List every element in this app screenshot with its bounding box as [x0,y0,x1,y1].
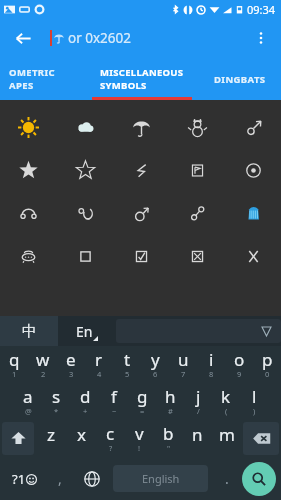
button[interactable]: i [197,346,225,383]
button[interactable]: e [57,346,85,383]
staticText: h [165,385,176,408]
button[interactable]: Symbol [169,192,225,235]
button[interactable]: Symbol [225,149,281,192]
staticText: MISCELLANEOUS SYMBOLS [100,66,184,92]
staticText: ?1 [12,470,26,488]
button[interactable]: Symbol [57,192,113,235]
staticText: w [36,348,50,371]
button[interactable]: MISCELLANEOUS SYMBOLS [92,58,192,100]
staticText: 1 [12,369,17,379]
staticText: 3 [69,369,74,379]
button[interactable]: Symbol [169,106,225,149]
button[interactable]: p [253,346,281,383]
staticText: 9 [237,369,242,379]
staticText: En [76,322,93,341]
staticText: 8 [209,369,214,379]
button[interactable]: m [212,420,241,457]
staticText: n [192,423,203,446]
button[interactable]: h [156,383,184,420]
staticText: , [58,469,62,488]
staticText: = [140,406,145,416]
staticText: 6 [153,369,158,379]
button[interactable]: ?1 [3,460,45,497]
staticText: a [23,385,33,408]
button[interactable]: OMETRIC APES [0,58,92,100]
button[interactable]: b [154,420,183,457]
button[interactable]: Symbol [169,149,225,192]
button[interactable]: k [212,383,240,420]
button[interactable]: s [42,383,71,420]
button[interactable]: r [85,346,113,383]
staticText: ( [225,406,228,416]
button[interactable]: z [36,420,66,457]
staticText: . [225,469,229,488]
button[interactable]: v [125,420,154,457]
staticText: d [80,385,91,408]
staticText: k [221,385,231,408]
button[interactable]: Symbol [225,235,281,278]
other: Expand suggestions [262,327,271,336]
staticText: r [95,348,103,371]
staticText: or 0x2602 [68,29,132,47]
button[interactable]: More options [247,24,275,52]
button[interactable]: Back [8,23,38,53]
button[interactable]: x [66,420,96,457]
staticText: ? [109,443,113,453]
button[interactable]: Change language [75,460,109,497]
button[interactable]: Symbol [113,106,169,149]
button[interactable]: Symbol [0,235,57,278]
staticText: 4 [97,369,102,379]
staticText: p [262,348,273,371]
button[interactable]: En [58,316,116,346]
button[interactable]: j [184,383,212,420]
button[interactable]: , [45,460,75,497]
button[interactable]: w [29,346,57,383]
button[interactable]: n [183,420,212,457]
staticText: v [135,422,144,445]
button[interactable]: DINGBATS [192,58,281,100]
button[interactable]: q [0,346,29,383]
button[interactable]: c [96,420,125,457]
button[interactable]: 中 [0,316,58,346]
staticText: # [168,406,173,416]
button[interactable]: Symbol [57,235,113,278]
staticText: x [77,423,86,446]
button[interactable]: y [141,346,169,383]
button[interactable]: Backspace [243,422,279,455]
button[interactable]: Expand suggestions [116,319,281,343]
button[interactable]: Symbol [225,192,281,235]
button[interactable]: o [225,346,253,383]
button[interactable]: Symbol [57,149,113,192]
staticText: m [219,423,235,446]
button[interactable]: a [13,383,42,420]
staticText: ) [253,406,256,416]
button[interactable]: Symbol [113,235,169,278]
staticText: o [234,348,245,371]
staticText: j [196,385,201,408]
button[interactable]: f [100,383,128,420]
staticText: * [54,406,59,416]
button[interactable]: Symbol [0,149,57,192]
button[interactable]: Shift [2,422,34,455]
staticText: English [142,471,180,486]
button[interactable]: t [113,346,141,383]
button[interactable]: Search [242,462,276,496]
button[interactable]: g [128,383,156,420]
button[interactable]: d [71,383,100,420]
staticText: DINGBATS [214,73,266,86]
button[interactable]: Symbol [0,192,57,235]
button[interactable]: Symbol [0,106,57,149]
button[interactable]: English [113,465,208,492]
staticText: c [106,422,115,445]
button[interactable]: Symbol [113,192,169,235]
button[interactable]: Symbol [225,106,281,149]
button[interactable]: u [169,346,197,383]
button[interactable]: Symbol [169,235,225,278]
button[interactable]: . [212,460,242,497]
button[interactable]: Symbol [113,149,169,192]
staticText: @ [25,406,32,416]
staticText: 09:34 [247,2,276,17]
staticText: / [197,406,200,416]
button[interactable]: Symbol [57,106,113,149]
button[interactable]: l [240,383,268,420]
